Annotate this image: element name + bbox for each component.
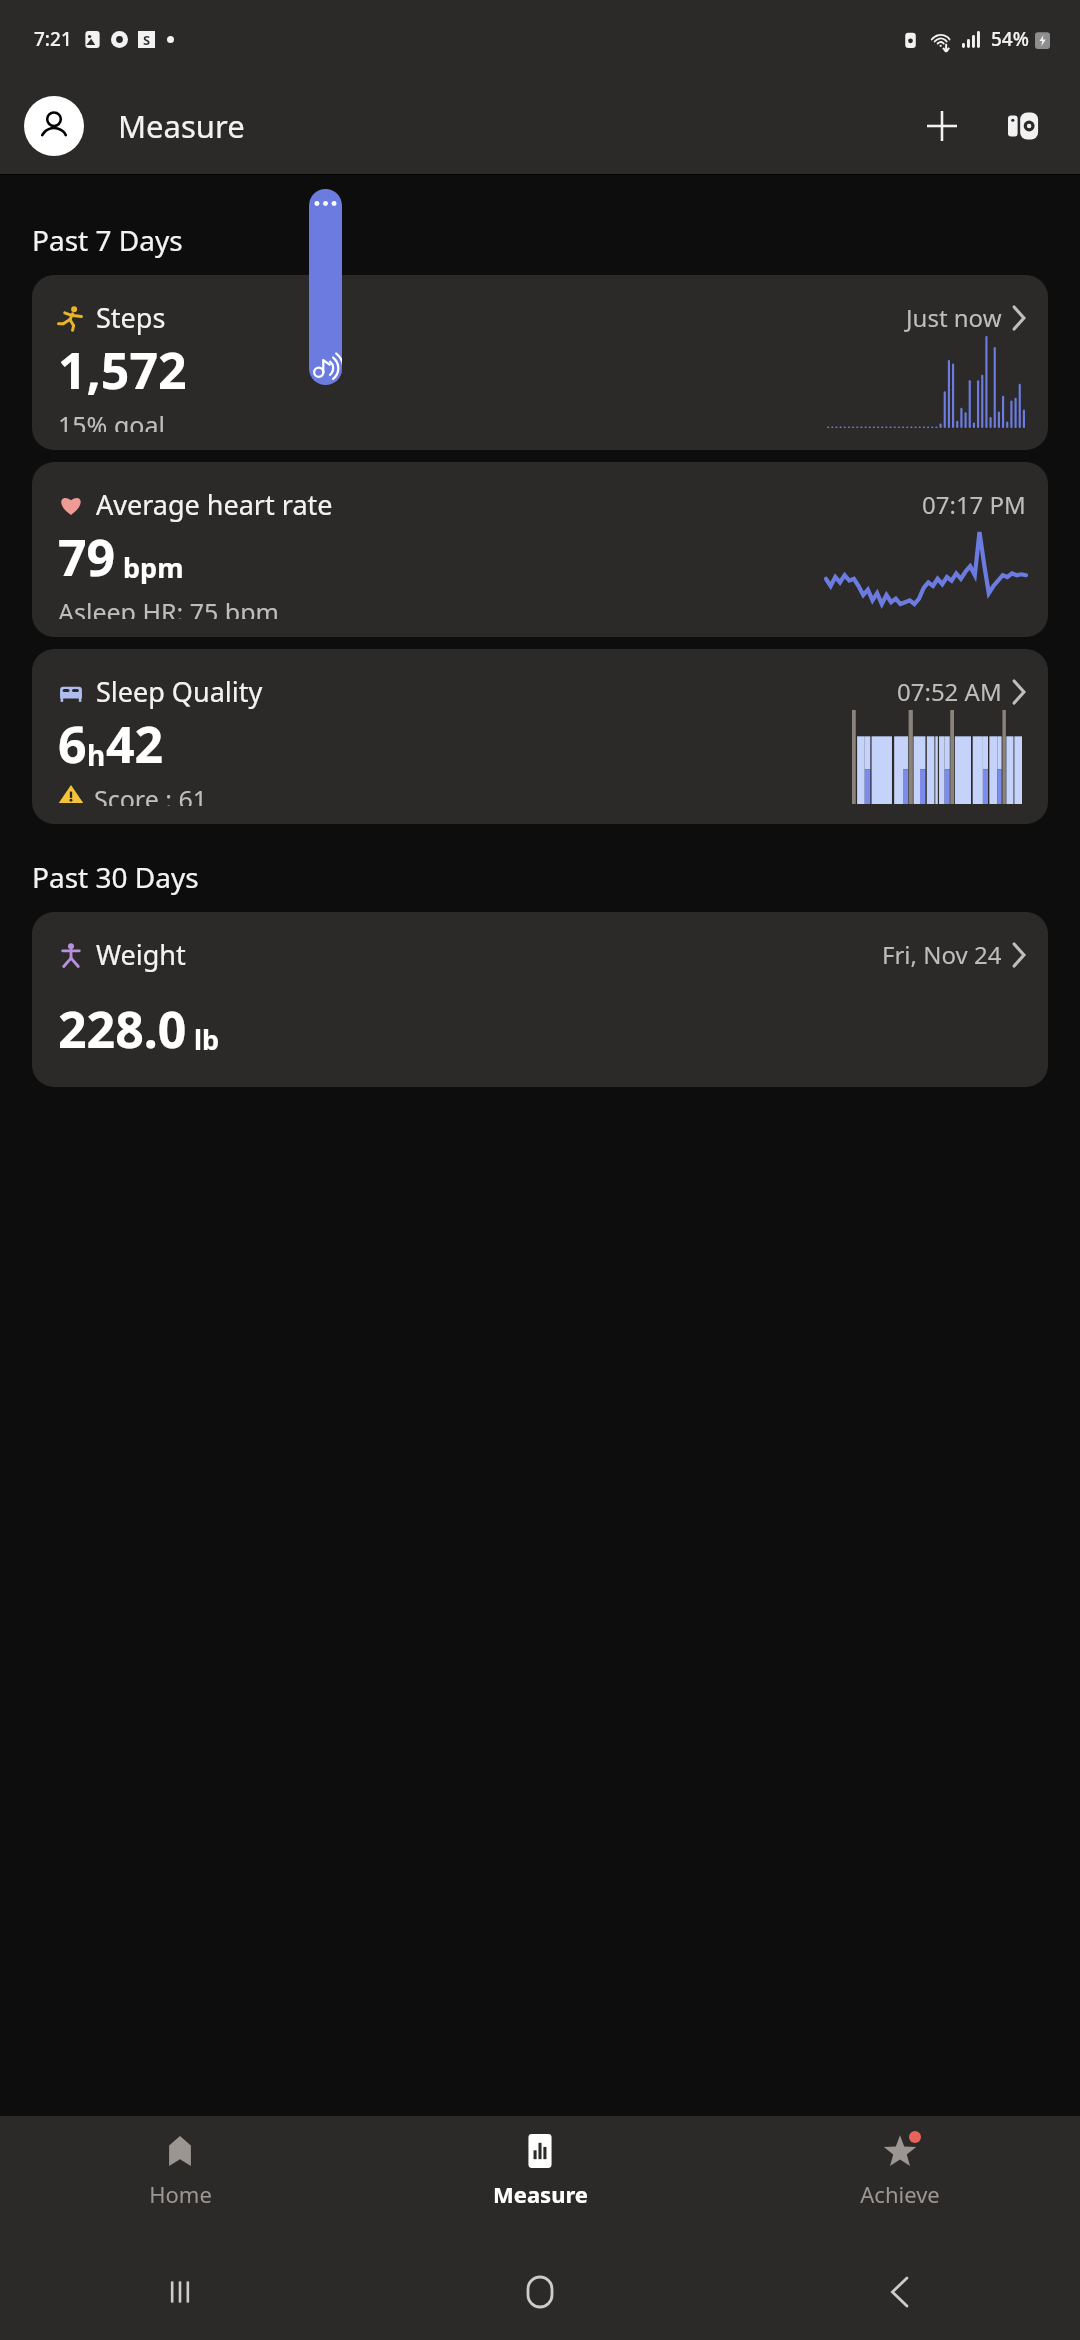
- button[interactable]: Sleep Quality: [32, 649, 1048, 824]
- button[interactable]: Measure: [360, 2116, 720, 2244]
- staticText: 1,572: [58, 336, 187, 404]
- staticText: 15% goal: [58, 408, 165, 432]
- staticText: 42: [106, 710, 164, 778]
- staticText: 228.0: [58, 995, 187, 1063]
- button[interactable]: Achieve: [720, 2116, 1080, 2244]
- staticText: S: [143, 31, 151, 48]
- staticText: bpm: [123, 549, 184, 586]
- button[interactable]: Recents: [0, 2244, 360, 2340]
- staticText: Weight: [96, 936, 186, 973]
- button[interactable]: Music controls: [309, 189, 342, 385]
- staticText: 79: [58, 523, 116, 591]
- button[interactable]: Back: [720, 2244, 1080, 2340]
- button[interactable]: Average heart rate: [32, 462, 1048, 637]
- staticText: Average heart rate: [96, 486, 333, 523]
- button[interactable]: Profile: [24, 96, 84, 156]
- button[interactable]: Weight: [32, 912, 1048, 1087]
- staticText: lb: [194, 1021, 220, 1058]
- staticText: h: [87, 736, 106, 774]
- staticText: Past 30 Days: [32, 858, 199, 896]
- staticText: 07:52 AM: [897, 675, 1002, 708]
- staticText: 54%: [991, 26, 1029, 52]
- button[interactable]: Devices: [996, 98, 1052, 154]
- staticText: Achieve: [860, 2179, 940, 2209]
- staticText: Steps: [96, 299, 166, 336]
- button[interactable]: Steps: [32, 275, 1048, 450]
- staticText: Home: [149, 2179, 212, 2209]
- staticText: Fri, Nov 24: [882, 938, 1002, 971]
- staticText: Measure: [493, 2179, 588, 2209]
- staticText: Asleep HR: 75 bpm: [58, 595, 279, 619]
- staticText: Measure: [118, 105, 245, 147]
- staticText: Past 7 Days: [32, 221, 183, 259]
- staticText: 07:17 PM: [922, 488, 1026, 521]
- button[interactable]: Home: [0, 2116, 360, 2244]
- staticText: Score : 61: [94, 782, 208, 806]
- button[interactable]: Add: [914, 98, 970, 154]
- staticText: 6: [58, 710, 87, 778]
- staticText: Sleep Quality: [96, 673, 263, 710]
- staticText: Just now: [906, 301, 1002, 334]
- button[interactable]: Home: [360, 2244, 720, 2340]
- staticText: 7:21: [34, 26, 72, 52]
